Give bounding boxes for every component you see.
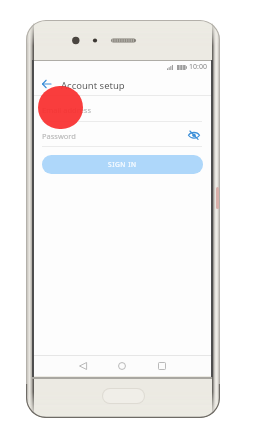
staticText: Email address — [42, 105, 92, 115]
button[interactable]: Home — [103, 389, 144, 403]
button[interactable]: SIGN IN — [42, 155, 203, 174]
staticText: Password — [42, 131, 76, 141]
button[interactable]: Show password — [184, 127, 204, 143]
button[interactable]: Back — [36, 73, 56, 95]
staticText: SIGN IN — [108, 160, 137, 169]
staticText: 10:00 — [189, 62, 207, 72]
staticText: Account setup — [61, 79, 125, 92]
button[interactable]: Home — [112, 356, 132, 376]
button[interactable]: Back — [73, 356, 93, 376]
button[interactable]: Recents — [152, 356, 172, 376]
